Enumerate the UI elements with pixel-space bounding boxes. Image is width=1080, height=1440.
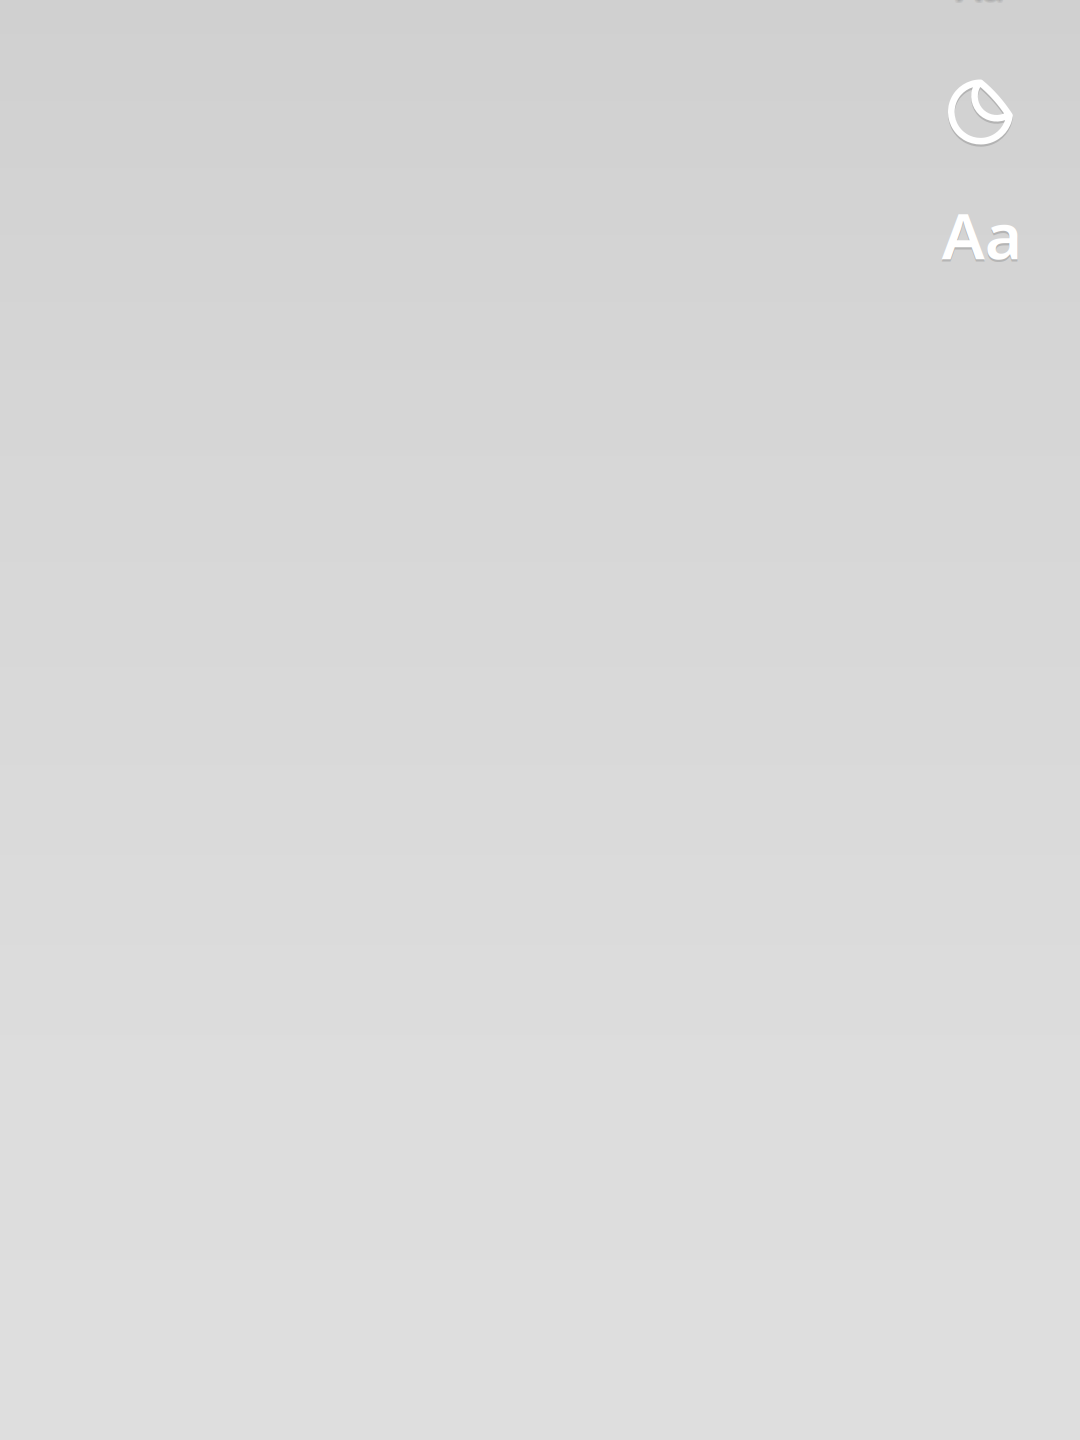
- button[interactable]: Appearance: [921, 53, 1039, 171]
- staticText: Aa: [955, 0, 1004, 11]
- staticText: Aa: [956, 0, 1005, 13]
- staticText: Aa: [956, 0, 1005, 10]
- staticText: Aa: [954, 0, 1003, 12]
- staticText: Aa: [955, 0, 1004, 13]
- staticText: Aa: [956, 0, 1005, 10]
- staticText: Aa: [957, 0, 1006, 11]
- staticText: Aa: [957, 0, 1006, 13]
- button[interactable]: Text size: [912, 179, 1052, 289]
- staticText: Aa: [942, 192, 1022, 277]
- staticText: Aa: [958, 0, 1007, 12]
- staticText: Aa: [942, 194, 1022, 279]
